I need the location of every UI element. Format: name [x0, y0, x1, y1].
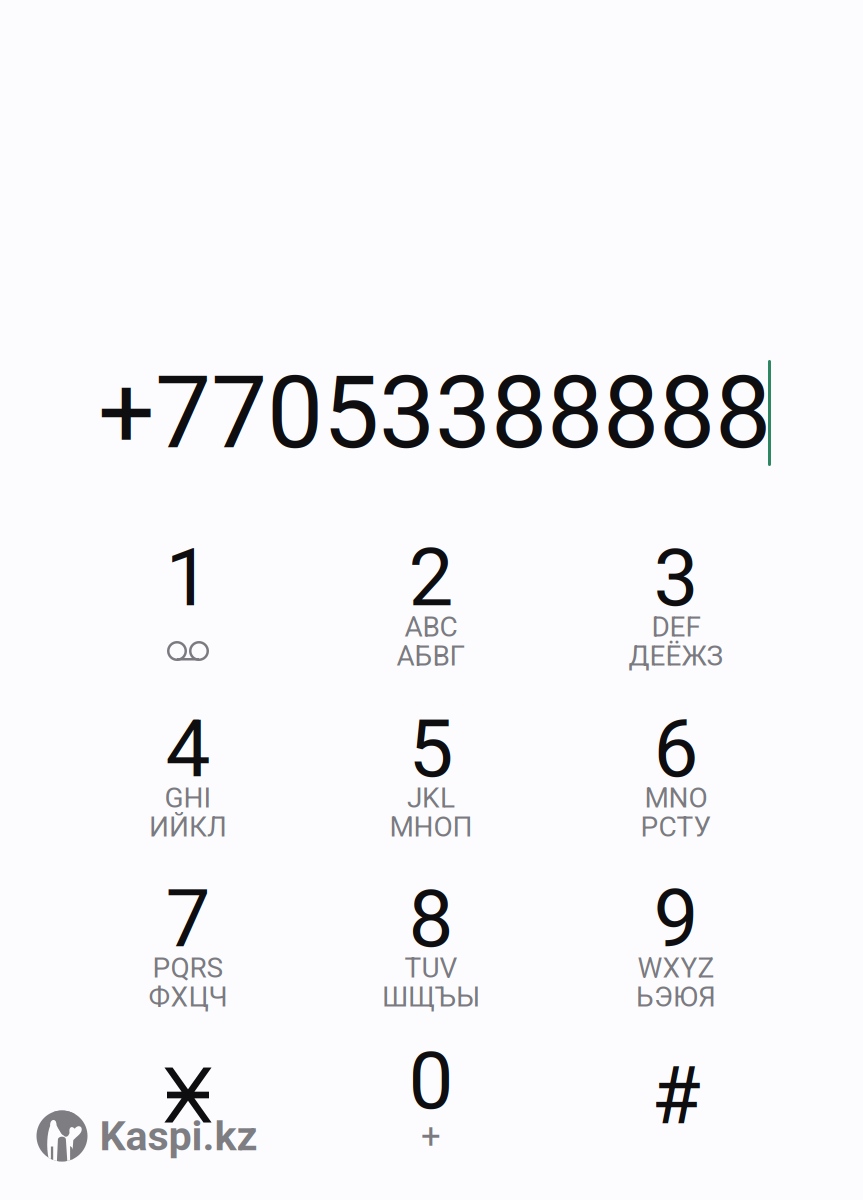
staticText: ФХЦЧ	[148, 981, 227, 1013]
staticText: 1	[165, 531, 210, 625]
staticText: 6	[653, 702, 698, 796]
button[interactable]: 5	[316, 707, 546, 875]
button[interactable]: 9	[561, 877, 791, 1045]
staticText: РСТУ	[640, 811, 711, 843]
button[interactable]: 0	[316, 1047, 546, 1200]
staticText: ИЙКЛ	[149, 811, 227, 843]
staticText: МНОП	[389, 811, 472, 843]
button[interactable]: 6	[561, 707, 791, 875]
staticText: PQRS	[152, 952, 223, 984]
staticText: #	[651, 1049, 700, 1143]
staticText: WXYZ	[637, 952, 714, 984]
staticText: ДЕЁЖЗ	[628, 640, 723, 672]
staticText: 0	[408, 1034, 453, 1128]
staticText: ЬЭЮЯ	[636, 981, 716, 1013]
button[interactable]: 1	[73, 536, 303, 704]
staticText: TUV	[404, 952, 457, 984]
staticText: 5	[408, 702, 453, 796]
button[interactable]: 7	[73, 877, 303, 1045]
staticText: 9	[653, 872, 698, 966]
staticText: ШЩЪЫ	[382, 981, 480, 1013]
staticText: 3	[653, 531, 698, 625]
staticText: DEF	[651, 611, 700, 643]
button[interactable]	[73, 1047, 303, 1200]
button[interactable]: 2	[316, 536, 546, 704]
staticText: JKL	[407, 782, 455, 814]
staticText: MNO	[644, 782, 707, 814]
staticText: ABC	[404, 611, 457, 643]
staticText: 8	[408, 872, 453, 966]
staticText: 2	[408, 531, 453, 625]
staticText: 4	[165, 702, 210, 796]
staticText: АБВГ	[396, 640, 465, 672]
button[interactable]: 8	[316, 877, 546, 1045]
staticText: +	[421, 1116, 441, 1156]
staticText: Kaspi.kz	[99, 1112, 257, 1160]
button[interactable]: #	[561, 1047, 791, 1200]
staticText: 7	[165, 872, 210, 966]
button[interactable]: 4	[73, 707, 303, 875]
button[interactable]: 3	[561, 536, 791, 704]
staticText: +77053388888	[98, 354, 771, 472]
staticText: GHI	[164, 782, 211, 814]
